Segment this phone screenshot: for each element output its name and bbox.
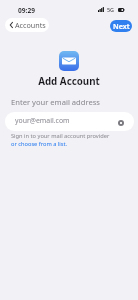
staticText: your@email.com	[15, 116, 70, 125]
staticText: 09:29	[18, 6, 35, 15]
staticText: Accounts	[15, 20, 46, 30]
staticText: Sign in to your mail account provider	[11, 132, 110, 140]
button[interactable]: Next	[110, 20, 132, 32]
button[interactable]: Clear text	[118, 120, 124, 126]
staticText: 5G	[107, 6, 115, 13]
staticText: Add Account	[0, 75, 138, 88]
other: Mail	[59, 51, 79, 71]
button[interactable]: your@email.com	[5, 112, 134, 131]
staticText: Next	[113, 21, 130, 31]
button[interactable]: or choose from a list.	[11, 140, 68, 148]
staticText: Enter your email address	[11, 97, 100, 107]
button[interactable]: Accounts	[5, 18, 49, 32]
